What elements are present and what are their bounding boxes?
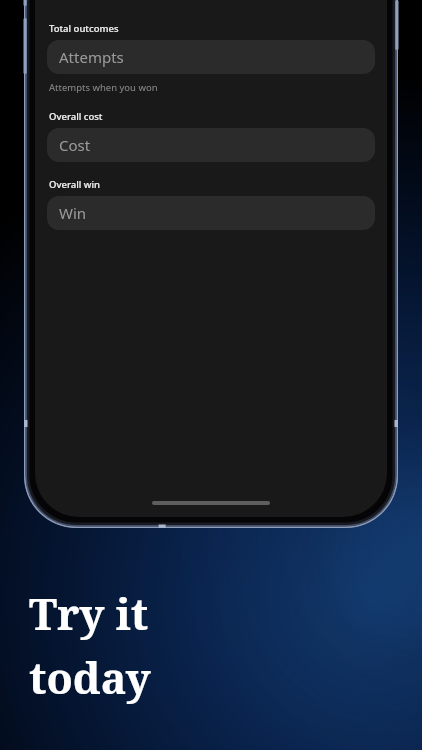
button[interactable]: Win xyxy=(47,196,375,230)
button[interactable]: Attempts xyxy=(47,40,375,74)
button[interactable]: Cost xyxy=(47,128,375,162)
staticText: Attempts xyxy=(59,47,124,67)
staticText: today xyxy=(29,648,151,707)
staticText: Attempts when you won xyxy=(49,81,158,94)
staticText: Try it xyxy=(29,584,149,643)
staticText: Win xyxy=(59,203,87,223)
staticText: Overall win xyxy=(49,178,100,191)
staticText: Overall cost xyxy=(49,110,103,123)
staticText: Total outcomes xyxy=(49,22,119,35)
staticText: Cost xyxy=(59,135,91,155)
